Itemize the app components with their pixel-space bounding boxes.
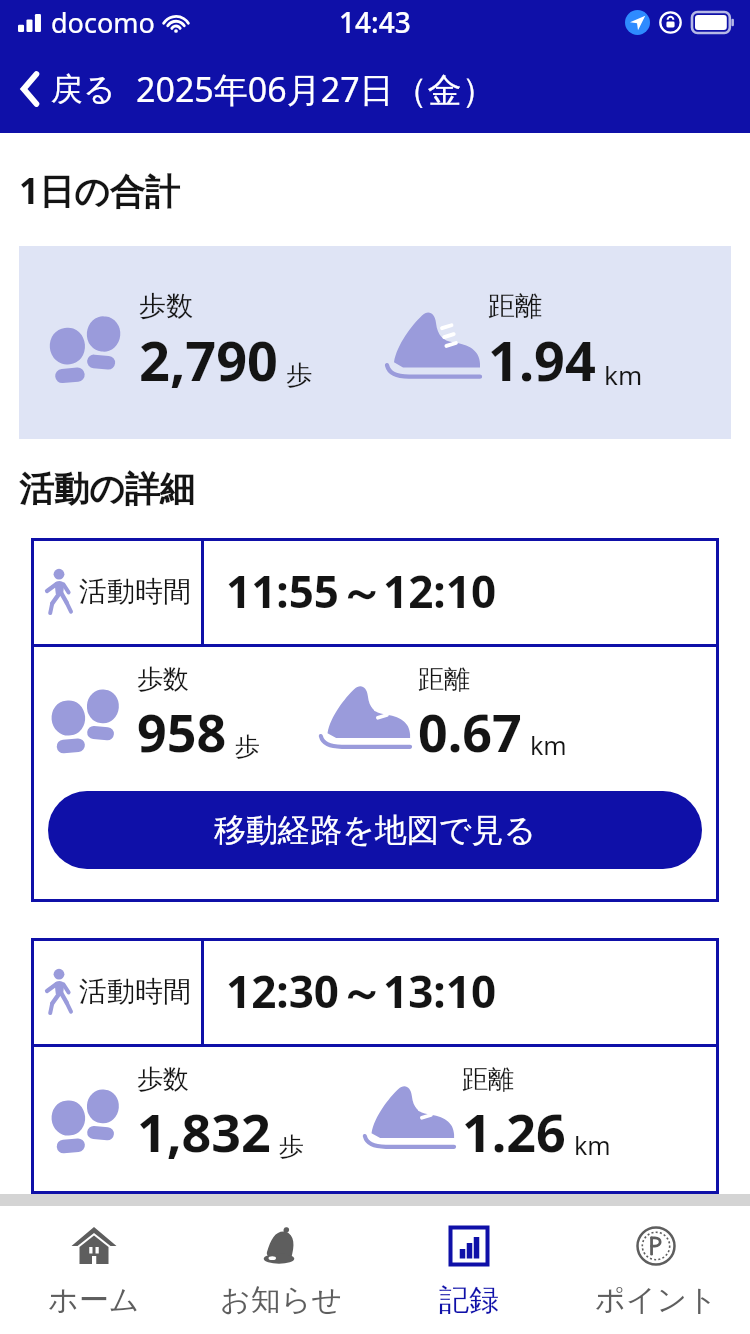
button[interactable]: ポイント (563, 1206, 749, 1334)
staticText: 12:30～13:10 (226, 961, 497, 1021)
staticText: docomo (51, 4, 155, 41)
staticText: 歩 (279, 1131, 304, 1162)
staticText: 移動経路を地図で見る (214, 810, 537, 850)
button[interactable]: 戻る (12, 59, 124, 119)
staticText: km (574, 1128, 611, 1162)
staticText: ポイント (595, 1281, 718, 1319)
staticText: 0.67 (418, 696, 522, 767)
staticText: お知らせ (220, 1281, 343, 1319)
staticText: 14:43 (339, 3, 411, 41)
button[interactable]: 移動経路を地図で見る (48, 791, 702, 869)
staticText: 活動時間 (79, 574, 191, 609)
staticText: 958 (137, 696, 227, 767)
staticText: 距離 (462, 1063, 514, 1096)
staticText: 歩数 (139, 289, 193, 323)
staticText: 戻る (51, 69, 116, 109)
staticText: 歩数 (137, 663, 189, 696)
staticText: 記録 (439, 1281, 499, 1319)
staticText: km (530, 728, 567, 762)
staticText: 2025年06月27日（金） (136, 66, 496, 112)
button[interactable]: 記録 (376, 1206, 562, 1334)
staticText: 歩数 (137, 1063, 189, 1096)
staticText: km (604, 357, 643, 392)
staticText: 距離 (488, 289, 542, 323)
staticText: ホーム (48, 1281, 140, 1319)
staticText: 歩 (286, 359, 312, 392)
staticText: 1,832 (137, 1096, 271, 1167)
staticText: 活動の詳細 (19, 467, 195, 511)
staticText: 距離 (418, 663, 470, 696)
staticText: 1日の合計 (19, 167, 180, 215)
staticText: 2,790 (139, 323, 278, 397)
staticText: 1.94 (488, 323, 596, 397)
staticText: 1.26 (462, 1096, 566, 1167)
staticText: 活動時間 (79, 974, 191, 1009)
staticText: 11:55～12:10 (226, 561, 497, 621)
staticText: 歩 (235, 731, 260, 762)
button[interactable]: ホーム (1, 1206, 187, 1334)
button[interactable]: お知らせ (188, 1206, 374, 1334)
